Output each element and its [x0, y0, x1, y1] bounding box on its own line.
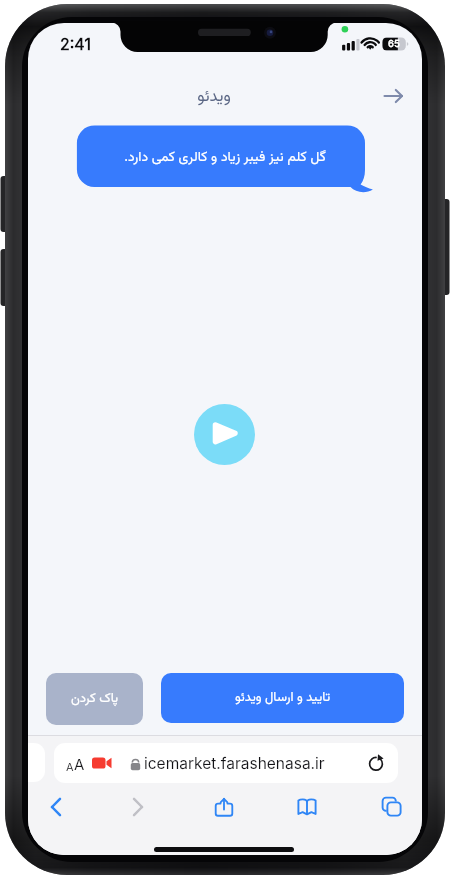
staticText: ‏گل کلم نیز فیبر زیاد و کالری کمی دارد.: [81, 147, 369, 169]
staticText: A: [66, 760, 74, 773]
button[interactable]: A: [54, 743, 398, 783]
staticText: 2:41: [60, 34, 91, 53]
button[interactable]: پاک کردن: [46, 673, 143, 725]
staticText: 65: [384, 38, 404, 50]
button[interactable]: Forward: [118, 785, 162, 829]
button[interactable]: Play video: [194, 404, 255, 465]
button[interactable]: تایید و ارسال ویدئو: [161, 673, 404, 723]
button[interactable]: Bookmarks: [286, 785, 330, 829]
staticText: پاک کردن: [71, 689, 119, 709]
staticText: icemarket.farashenasa.ir: [144, 754, 325, 773]
staticText: A: [74, 755, 85, 773]
button[interactable]: Next: [374, 77, 412, 115]
button[interactable]: Tabs: [370, 785, 414, 829]
button[interactable]: Back: [32, 785, 76, 829]
staticText: تایید و ارسال ویدئو: [235, 688, 331, 708]
staticText: ویدئو: [197, 84, 231, 110]
button[interactable]: Share: [202, 785, 246, 829]
